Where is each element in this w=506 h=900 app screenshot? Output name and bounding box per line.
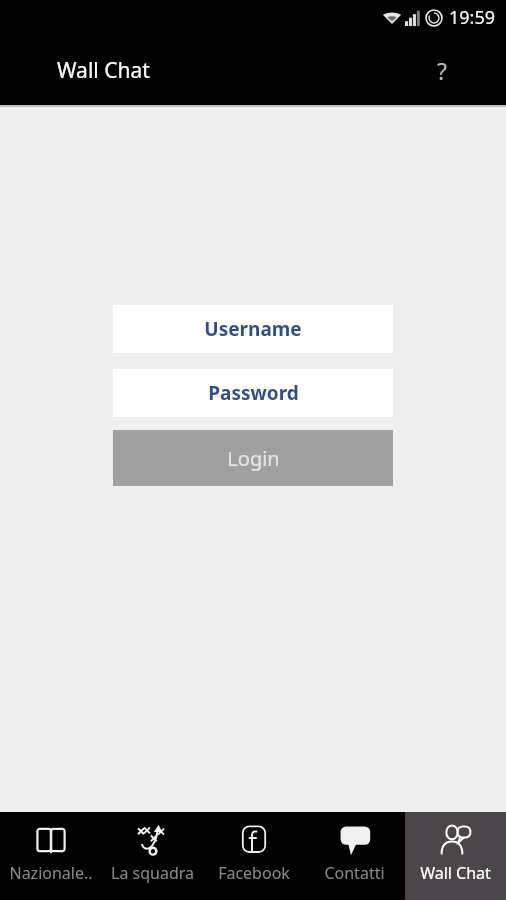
button[interactable]: Contatti: [304, 812, 405, 900]
staticText: Facebook: [218, 862, 290, 884]
staticText: Wall Chat: [57, 56, 150, 85]
button[interactable]: Login: [113, 430, 393, 486]
button[interactable]: Help: [422, 50, 462, 90]
staticText: La squadra: [111, 862, 194, 884]
staticText: Password: [208, 380, 299, 406]
button[interactable]: Nazionale..: [0, 812, 102, 900]
button[interactable]: Facebook: [203, 812, 304, 900]
staticText: Contatti: [324, 862, 385, 884]
staticText: Login: [227, 445, 280, 472]
button[interactable]: Password: [113, 369, 393, 417]
staticText: ?: [437, 55, 447, 86]
staticText: 19:59: [449, 5, 496, 30]
button[interactable]: Wall Chat: [405, 812, 506, 900]
staticText: Nazionale..: [9, 862, 93, 884]
button[interactable]: La squadra: [102, 812, 203, 900]
staticText: Username: [204, 316, 302, 342]
staticText: Wall Chat: [420, 862, 491, 884]
button[interactable]: Username: [113, 305, 393, 353]
